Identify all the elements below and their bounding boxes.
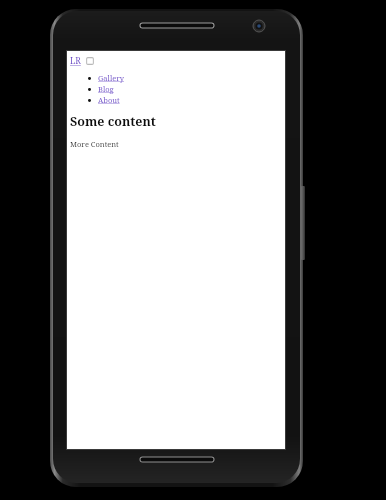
button[interactable]: About	[98, 95, 120, 105]
button[interactable]: Toggle menu	[86, 57, 94, 65]
staticText: LR	[70, 55, 81, 67]
button[interactable]: Blog	[98, 84, 114, 94]
staticText: About	[98, 95, 120, 105]
staticText: More Content	[70, 139, 119, 149]
button[interactable]: Gallery	[98, 73, 125, 83]
button[interactable]: LR	[70, 55, 81, 67]
staticText: Blog	[98, 84, 114, 94]
staticText: Gallery	[98, 73, 125, 83]
button[interactable]: Power button	[301, 186, 305, 260]
staticText: Some content	[70, 113, 156, 130]
